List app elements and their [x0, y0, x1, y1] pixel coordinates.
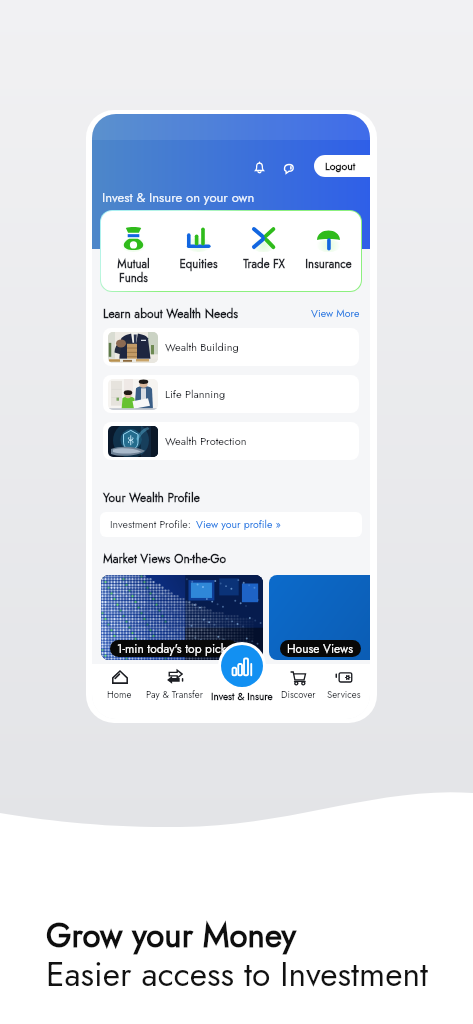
- button[interactable]: Investment Profile:: [100, 512, 362, 537]
- button[interactable]: [269, 575, 370, 660]
- button[interactable]: View More: [311, 306, 360, 321]
- button[interactable]: Wealth Protection: [103, 422, 359, 460]
- button[interactable]: Notifications: [252, 160, 267, 175]
- staticText: Home: [107, 688, 132, 702]
- button[interactable]: Services: [311, 664, 370, 708]
- staticText: Market Views On-the-Go: [103, 550, 227, 567]
- button[interactable]: Pay & Transfer: [141, 664, 207, 708]
- staticText: View More: [311, 306, 360, 321]
- staticText: Trade FX: [243, 256, 285, 273]
- staticText: Grow your Money: [46, 912, 296, 960]
- staticText: Learn about Wealth Needs: [103, 305, 239, 322]
- button[interactable]: Messages: [281, 161, 297, 177]
- button[interactable]: Discover: [265, 664, 331, 708]
- staticText: Your Wealth Profile: [103, 489, 200, 506]
- staticText: House Views: [287, 640, 354, 657]
- staticText: Wealth Building: [165, 339, 239, 355]
- button[interactable]: Home: [92, 664, 152, 708]
- button[interactable]: Life Planning: [103, 375, 359, 413]
- staticText: Investment Profile:: [110, 517, 191, 532]
- button[interactable]: Wealth Building: [103, 328, 359, 366]
- button[interactable]: [101, 575, 263, 660]
- staticText: Discover: [281, 688, 316, 702]
- button[interactable]: Trade FX: [231, 211, 296, 291]
- button[interactable]: Equities: [166, 211, 231, 291]
- staticText: Equities: [179, 256, 218, 273]
- staticText: Insurance: [305, 256, 352, 273]
- staticText: Logout: [325, 159, 356, 174]
- button[interactable]: Mutual Funds: [101, 211, 166, 291]
- staticText: Life Planning: [165, 386, 226, 402]
- staticText: View your profile »: [196, 517, 281, 532]
- button[interactable]: Insurance: [296, 211, 361, 291]
- staticText: 1-min today's top picks: [117, 640, 231, 657]
- staticText: Invest & Insure on your own: [102, 188, 255, 207]
- staticText: Services: [327, 688, 361, 702]
- staticText: Invest & Insure: [211, 689, 273, 703]
- staticText: Pay & Transfer: [146, 688, 203, 702]
- button[interactable]: Invest & Insure: [221, 645, 263, 687]
- staticText: Easier access to Investment: [46, 950, 429, 998]
- staticText: Mutual Funds: [117, 256, 150, 286]
- staticText: Wealth Protection: [165, 433, 247, 449]
- button[interactable]: Logout: [314, 155, 370, 177]
